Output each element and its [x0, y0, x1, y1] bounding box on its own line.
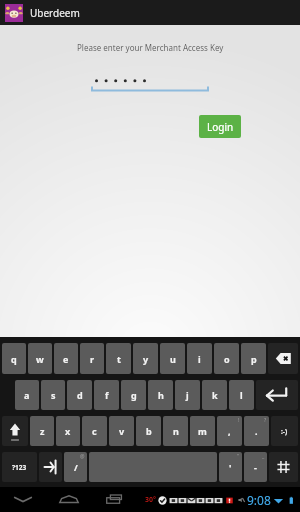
staticText: i	[198, 353, 201, 365]
staticText: t	[117, 353, 121, 365]
button[interactable]: Home	[46, 487, 92, 512]
button[interactable]: Enter	[256, 380, 298, 410]
button[interactable]: :-)	[271, 416, 298, 446]
staticText: v	[119, 425, 125, 437]
staticText: x	[65, 425, 71, 437]
staticText: k	[212, 389, 218, 401]
staticText: m	[198, 425, 207, 437]
button[interactable]: c	[82, 416, 107, 446]
button[interactable]	[91, 72, 209, 92]
button[interactable]: s	[41, 380, 65, 410]
button[interactable]: f	[94, 380, 119, 410]
staticText: a	[24, 389, 30, 401]
button[interactable]: t	[106, 343, 131, 374]
button[interactable]: x	[56, 416, 80, 446]
staticText: f	[105, 389, 109, 401]
staticText: n	[173, 425, 179, 437]
staticText: Please enter your Merchant Access Key	[77, 42, 224, 53]
staticText: r	[90, 353, 95, 365]
button[interactable]: z	[30, 416, 54, 446]
staticText: z	[40, 425, 45, 437]
staticText: q	[11, 353, 17, 365]
button[interactable]: Change keyboard	[269, 452, 298, 482]
staticText: :-)	[281, 427, 288, 436]
staticText: ?123	[12, 463, 27, 472]
staticText: 30°	[145, 495, 156, 505]
staticText: Login	[207, 120, 234, 134]
other: Uberdeem app icon	[5, 4, 23, 22]
staticText: o	[224, 353, 230, 365]
button[interactable]: ?123	[2, 452, 37, 482]
button[interactable]: v	[109, 416, 134, 446]
button[interactable]: p	[241, 343, 266, 374]
staticText: p	[251, 353, 257, 365]
button[interactable]: "	[219, 452, 242, 482]
button[interactable]: k	[202, 380, 227, 410]
button[interactable]: q	[2, 343, 26, 374]
staticText: b	[146, 425, 152, 437]
button[interactable]: g	[121, 380, 146, 410]
staticText: '	[229, 461, 232, 473]
button[interactable]: d	[67, 380, 92, 410]
button[interactable]: Tab	[39, 452, 62, 482]
staticText: ?	[264, 417, 267, 424]
staticText: u	[170, 353, 176, 365]
button[interactable]: h	[148, 380, 173, 410]
button[interactable]: m	[190, 416, 215, 446]
button[interactable]: n	[163, 416, 188, 446]
staticText: s	[51, 389, 56, 401]
staticText: "	[237, 453, 240, 460]
staticText: Uberdeem	[30, 6, 80, 20]
button[interactable]: y	[133, 343, 158, 374]
button[interactable]: Recents	[92, 487, 138, 512]
staticText: /	[74, 461, 78, 473]
staticText: .	[255, 425, 258, 437]
staticText: e	[63, 353, 69, 365]
staticText: g	[131, 389, 137, 401]
staticText: _	[262, 453, 265, 460]
staticText: ,	[228, 425, 231, 437]
button[interactable]: j	[175, 380, 200, 410]
staticText: -	[254, 461, 257, 473]
button[interactable]: Back	[0, 487, 46, 512]
staticText: !	[238, 417, 240, 424]
button[interactable]: Backspace	[268, 343, 298, 374]
button[interactable]: u	[160, 343, 185, 374]
button[interactable]: ?	[244, 416, 269, 446]
button[interactable]: l	[229, 380, 254, 410]
staticText: l	[240, 389, 243, 401]
button[interactable]: a	[15, 380, 39, 410]
button[interactable]: r	[80, 343, 104, 374]
button[interactable]: e	[54, 343, 78, 374]
button[interactable]: i	[187, 343, 212, 374]
button[interactable]: Login	[199, 115, 241, 138]
button[interactable]: Shift	[2, 416, 28, 446]
staticText: d	[77, 389, 83, 401]
staticText: @	[80, 453, 85, 460]
staticText: y	[143, 353, 149, 365]
button[interactable]: o	[214, 343, 239, 374]
staticText: j	[186, 389, 189, 401]
staticText: c	[92, 425, 97, 437]
button[interactable]: w	[28, 343, 52, 374]
staticText: 9:08	[247, 492, 271, 508]
button[interactable]: @	[64, 452, 87, 482]
button[interactable]: !	[217, 416, 242, 446]
staticText: w	[36, 353, 44, 365]
staticText: h	[158, 389, 164, 401]
button[interactable]: b	[136, 416, 161, 446]
button[interactable]: _	[244, 452, 267, 482]
